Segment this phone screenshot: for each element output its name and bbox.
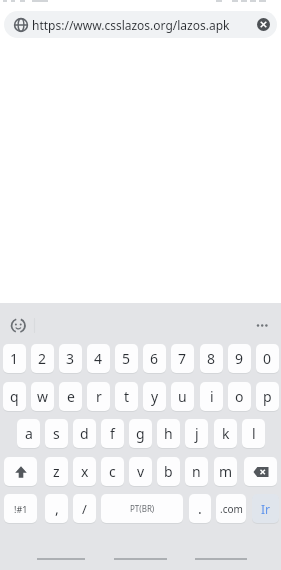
staticText: 2 [38,349,47,368]
button[interactable]: s [45,419,68,448]
button[interactable]: / [73,494,96,523]
button[interactable]: 3 [59,344,82,373]
staticText: v [137,462,145,481]
button[interactable]: u [171,382,194,411]
staticText: , [55,499,59,518]
button[interactable]: b [157,457,180,486]
button[interactable]: 9 [228,344,251,373]
button[interactable]: w [31,382,54,411]
button[interactable] [4,457,37,486]
button[interactable] [30,551,92,567]
button[interactable]: PT(BR) [101,494,183,523]
staticText: r [96,387,102,406]
button[interactable]: q [3,382,26,411]
button[interactable]: f [101,419,124,448]
staticText: a [25,424,33,443]
staticText: / [82,500,87,518]
staticText: z [53,462,60,481]
button[interactable]: d [73,419,96,448]
staticText: s [53,424,60,443]
button[interactable]: l [242,419,265,448]
button[interactable]: 6 [143,344,166,373]
staticText: j [195,424,199,443]
staticText: b [164,462,173,481]
button[interactable]: .com [216,494,246,523]
button[interactable] [257,18,270,31]
button[interactable]: , [45,494,68,523]
staticText: . [198,499,202,518]
staticText: .com [220,502,243,516]
button[interactable]: a [17,419,40,448]
button[interactable]: 7 [171,344,194,373]
button[interactable]: v [129,457,152,486]
button[interactable]: i [200,382,223,411]
staticText: q [10,387,19,406]
button[interactable]: k [214,419,237,448]
button[interactable]: p [256,382,279,411]
button[interactable]: t [115,382,138,411]
staticText: 9 [235,349,244,368]
staticText: PT(BR) [130,503,155,514]
button[interactable]: 2 [31,344,54,373]
button[interactable]: o [228,382,251,411]
button[interactable]: . [189,494,211,523]
button[interactable]: !#1 [4,494,37,523]
button[interactable]: n [185,457,208,486]
button[interactable]: r [87,382,110,411]
button[interactable]: x [73,457,96,486]
staticText: n [192,462,201,481]
button[interactable]: 5 [115,344,138,373]
button[interactable]: m [214,457,237,486]
staticText: l [252,424,256,443]
button[interactable]: 4 [87,344,110,373]
staticText: o [235,387,244,406]
staticText: !#1 [14,503,28,515]
button[interactable]: y [143,382,166,411]
staticText: 3 [66,349,75,368]
staticText: h [164,424,173,443]
staticText: w [37,387,49,406]
button[interactable]: 0 [256,344,279,373]
staticText: 5 [122,349,131,368]
staticText: p [263,387,272,406]
button[interactable]: Ir [252,494,279,523]
button[interactable]: c [101,457,124,486]
button[interactable]: 8 [200,344,223,373]
button[interactable]: h [157,419,180,448]
staticText: t [124,387,130,406]
button[interactable]: g [129,419,152,448]
button[interactable] [244,457,277,486]
staticText: d [80,424,89,443]
staticText: 8 [207,349,216,368]
button[interactable]: j [185,419,208,448]
button[interactable]: https://www.csslazos.org/lazos.apk [4,11,277,38]
staticText: c [109,462,116,481]
staticText: g [136,424,145,443]
staticText: 1 [10,349,19,368]
staticText: i [210,387,214,406]
staticText: https://www.csslazos.org/lazos.apk [32,17,230,33]
staticText: y [151,387,159,406]
staticText: e [67,387,75,406]
staticText: f [110,424,115,443]
staticText: Ir [261,501,271,517]
staticText: x [81,462,89,481]
staticText: k [222,424,230,443]
staticText: 0 [263,349,272,368]
staticText: 7 [178,349,187,368]
staticText: 4 [94,349,103,368]
button[interactable]: z [45,457,68,486]
button[interactable]: 1 [3,344,26,373]
button[interactable] [188,551,254,567]
button[interactable] [107,551,174,567]
staticText: u [178,387,187,406]
button[interactable] [246,315,276,337]
staticText: m [219,462,233,481]
button[interactable]: e [59,382,82,411]
staticText: 6 [150,349,159,368]
button[interactable] [8,315,30,337]
